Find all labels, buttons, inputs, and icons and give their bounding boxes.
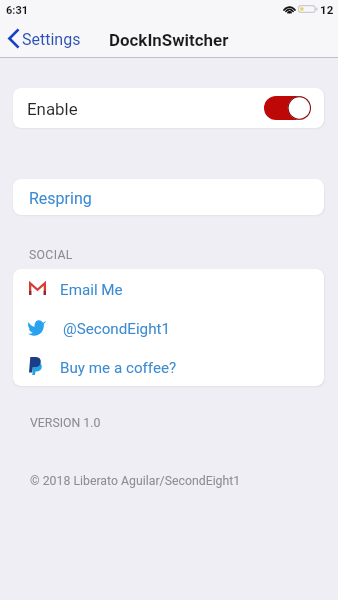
button[interactable]: Respring (13, 179, 324, 215)
staticText: Buy me a coffee? (60, 359, 177, 377)
button[interactable]: Enable (13, 88, 324, 128)
staticText: Email Me (60, 281, 123, 299)
button[interactable]: @SecondEight1 (13, 308, 324, 347)
button[interactable]: Enable toggle (264, 96, 311, 120)
staticText: 6:31 (6, 4, 29, 17)
staticText: @SecondEight1 (63, 320, 170, 338)
button[interactable]: Email Me (13, 269, 324, 308)
button[interactable]: Settings (0, 25, 91, 54)
other: Wi-Fi (283, 5, 296, 14)
other: Battery (298, 5, 318, 13)
staticText: VERSION 1.0 (30, 416, 101, 430)
staticText: Respring (29, 189, 92, 208)
staticText: Enable (27, 99, 78, 119)
staticText: © 2018 Liberato Aguilar/SecondEight1 (30, 474, 241, 488)
staticText: 12 (320, 3, 334, 17)
staticText: Settings (22, 30, 81, 49)
button[interactable]: Buy me a coffee? (13, 347, 324, 386)
staticText: SOCIAL (29, 248, 73, 262)
staticText: DockInSwitcher (109, 30, 229, 50)
